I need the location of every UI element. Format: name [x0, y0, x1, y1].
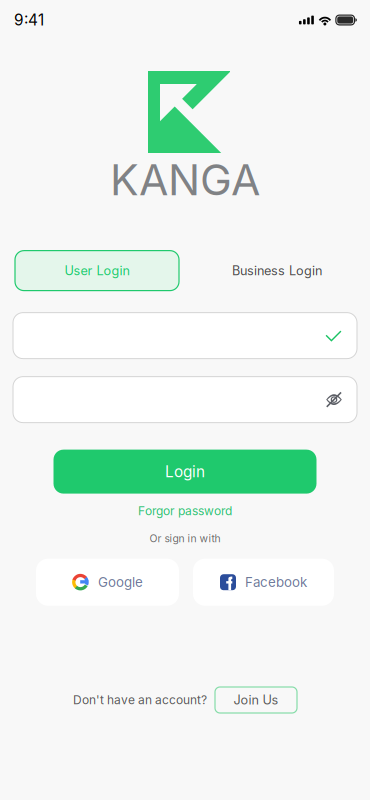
staticText: Google — [98, 574, 143, 590]
button[interactable]: Google — [36, 559, 179, 606]
staticText: Or sign in with — [149, 532, 220, 545]
staticText: Join Us — [233, 692, 278, 708]
staticText: Facebook — [245, 574, 307, 590]
staticText: 9:41 — [14, 11, 44, 29]
button[interactable]: Forgor password — [132, 501, 238, 521]
button[interactable]: User Login — [15, 251, 179, 291]
button[interactable]: Login — [53, 450, 316, 494]
staticText: Forgor password — [138, 504, 232, 518]
staticText: User Login — [64, 263, 129, 278]
button[interactable]: Join Us — [215, 687, 297, 713]
button[interactable]: Facebook — [193, 559, 334, 606]
button[interactable]: Business Login — [197, 251, 357, 291]
staticText: KANGA — [110, 154, 260, 206]
staticText: Don't have an account? — [73, 693, 207, 707]
staticText: Business Login — [232, 263, 322, 278]
staticText: Login — [165, 462, 205, 481]
